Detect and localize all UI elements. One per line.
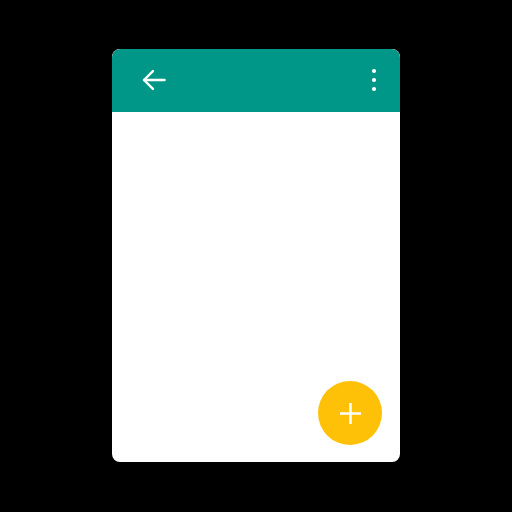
button[interactable]: Add	[318, 381, 382, 445]
button[interactable]: Back	[130, 56, 178, 104]
button[interactable]: More options	[350, 56, 398, 104]
